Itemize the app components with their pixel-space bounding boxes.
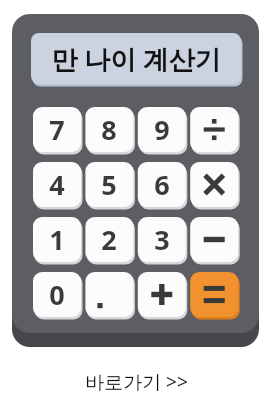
staticText: 5 [101,166,117,203]
button[interactable]: 8 [85,107,133,152]
button[interactable]: 1 [33,217,81,262]
staticText: 8 [101,111,117,148]
button[interactable]: Multiply [190,162,238,207]
button[interactable]: 9 [138,107,186,152]
staticText: 바로가기 >> [85,369,188,395]
button[interactable]: 만 나이 계산기 [31,33,241,84]
button[interactable]: 7 [33,107,81,152]
button[interactable]: Add [138,272,186,317]
button[interactable]: 0 [33,272,81,317]
button[interactable]: 4 [33,162,81,207]
staticText: 만 나이 계산기 [51,41,221,77]
button[interactable]: Subtract [190,217,238,262]
button[interactable]: 3 [138,217,186,262]
button[interactable]: 6 [138,162,186,207]
button[interactable]: Divide [190,107,238,152]
staticText: 7 [49,111,65,148]
staticText: 0 [49,276,65,313]
staticText: 2 [101,221,117,258]
staticText: 3 [154,221,170,258]
button[interactable]: 2 [85,217,133,262]
button[interactable]: Decimal point [85,272,133,317]
button[interactable]: 바로가기 >> [0,364,272,400]
staticText: 1 [49,221,65,258]
staticText: 9 [154,111,170,148]
staticText: 4 [49,166,65,203]
button[interactable]: Equals [190,272,238,317]
staticText: 6 [154,166,170,203]
button[interactable]: 5 [85,162,133,207]
